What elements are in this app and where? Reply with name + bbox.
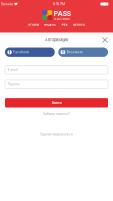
staticText: E-mail — [8, 68, 18, 72]
staticText: ЯНДЕКС — [44, 23, 56, 26]
staticText: Билайн — [1, 2, 13, 6]
staticText: Войти — [51, 101, 61, 105]
staticText: Пароль — [8, 82, 20, 86]
button[interactable]: Забыли пароль? — [0, 111, 113, 117]
staticText: РБК — [62, 23, 68, 26]
staticText: Зарегистрироваться — [40, 133, 73, 136]
staticText: единый аккаунт — [54, 18, 70, 21]
staticText: f — [9, 49, 11, 55]
staticText: ОБЛАКО — [73, 23, 85, 26]
staticText: ЭТАЖИ — [28, 23, 39, 26]
staticText: Facebook — [13, 50, 29, 54]
button[interactable]: Зарегистрироваться — [0, 131, 113, 137]
staticText: PASS — [54, 10, 71, 18]
button[interactable]: Войти — [5, 98, 108, 107]
staticText: Авторизация — [45, 38, 68, 42]
staticText: 6:18 PM — [53, 2, 65, 6]
button[interactable]: B — [58, 47, 108, 57]
staticText: Вконтакте — [67, 50, 83, 54]
staticText: Забыли пароль? — [43, 112, 70, 116]
button[interactable]: Close — [101, 36, 109, 44]
button[interactable]: f — [5, 47, 55, 57]
staticText: B — [62, 50, 64, 54]
